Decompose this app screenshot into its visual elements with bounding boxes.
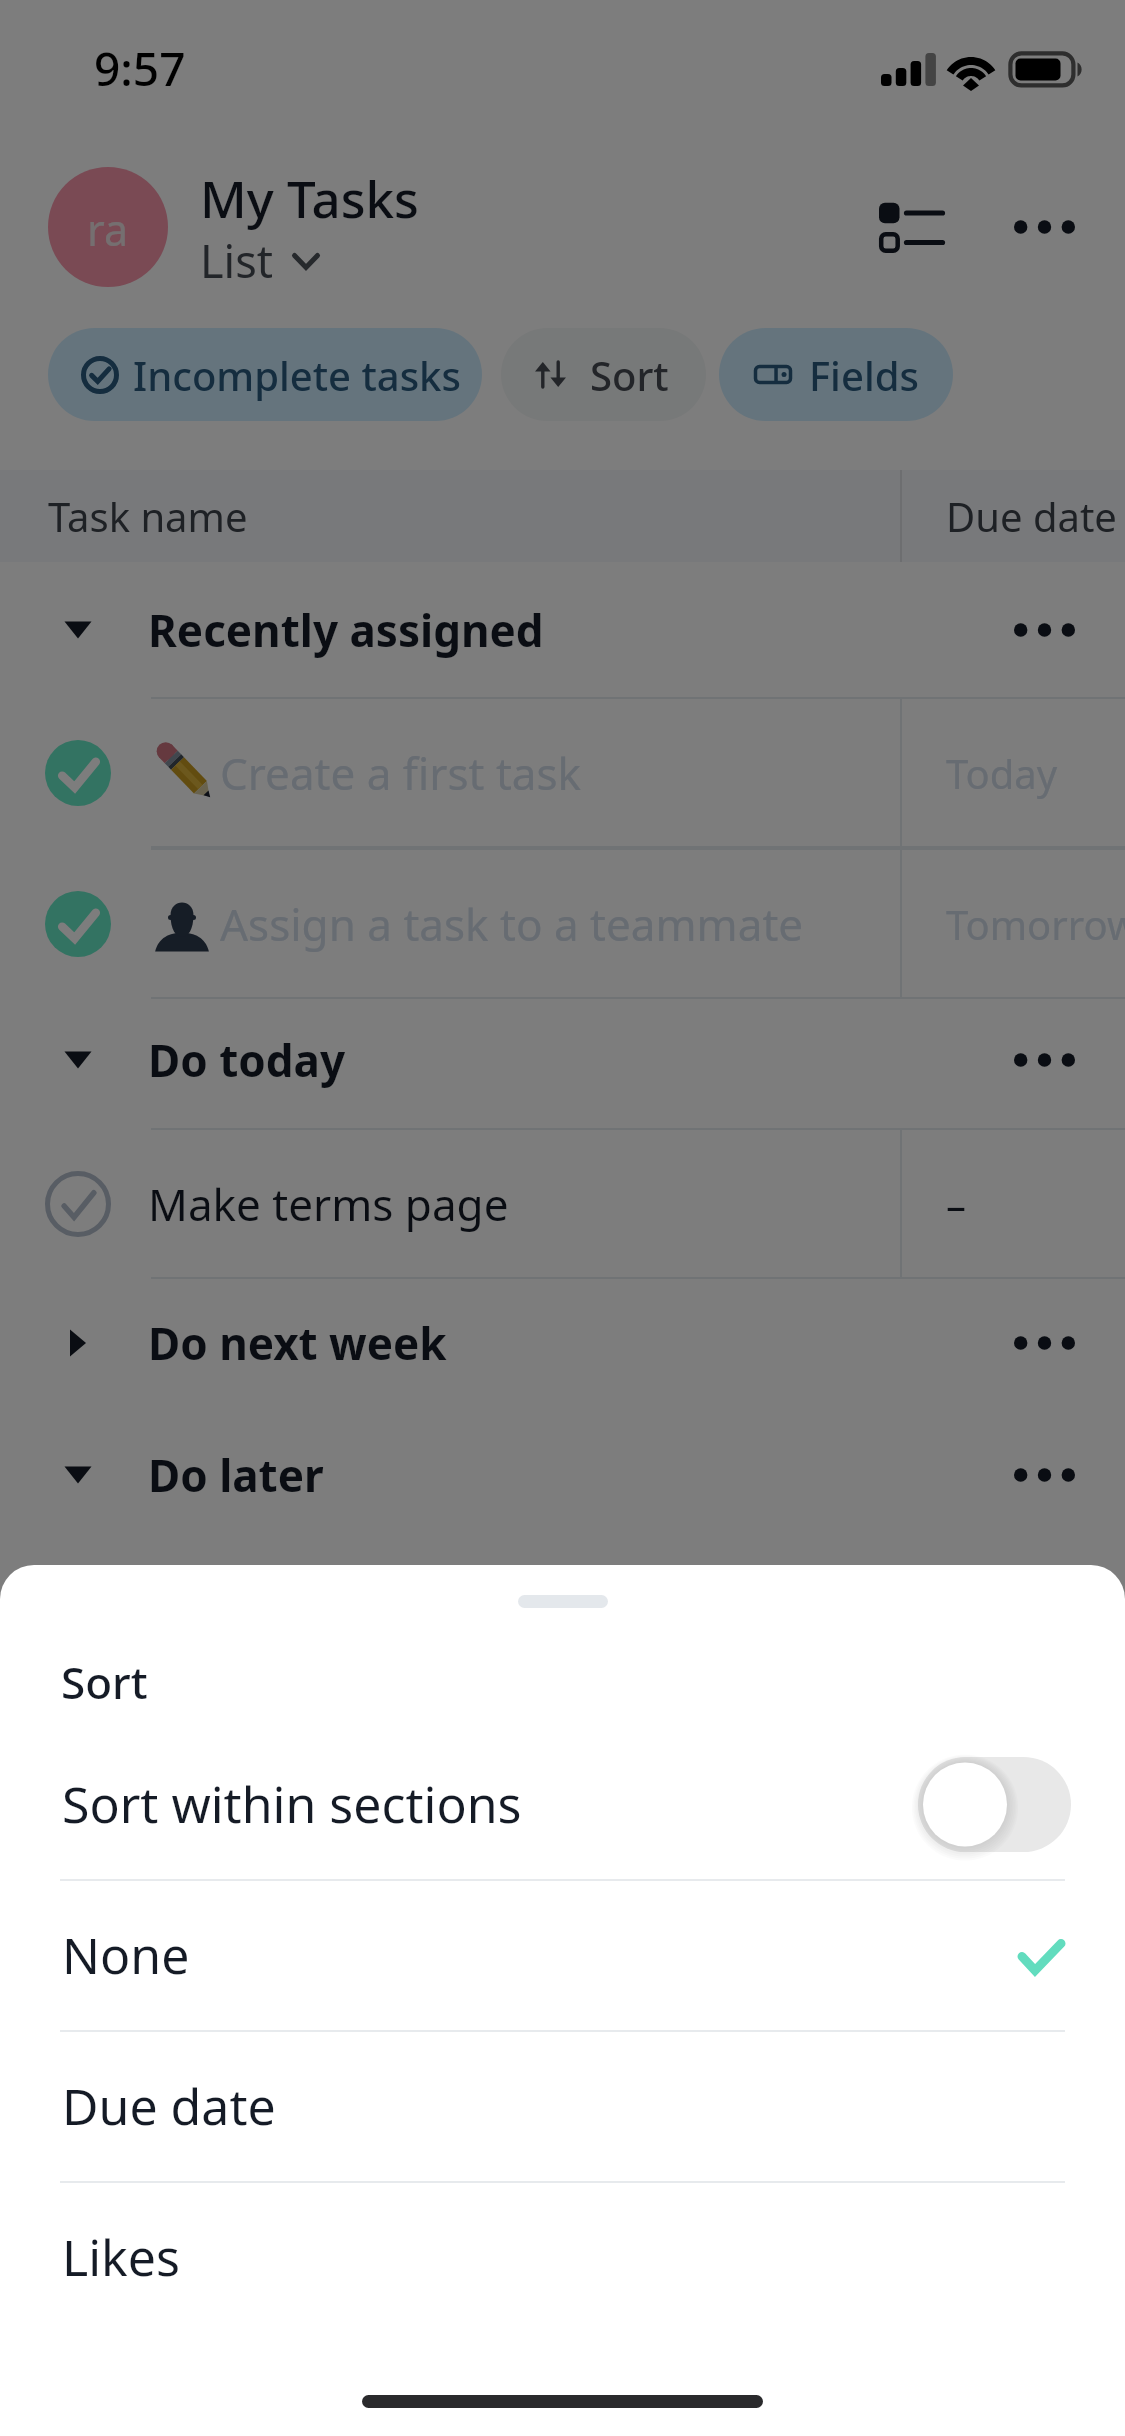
staticText: Make terms page bbox=[148, 1174, 509, 1234]
staticText: – bbox=[946, 1177, 966, 1231]
button[interactable]: Do later bbox=[0, 1415, 1125, 1535]
button[interactable]: Sort within sections toggle bbox=[918, 1757, 1071, 1852]
button[interactable]: Likes bbox=[0, 2181, 1125, 2332]
staticText: My Tasks bbox=[200, 163, 419, 232]
button[interactable]: Sort bbox=[501, 328, 706, 421]
staticText: 9:57 bbox=[94, 37, 186, 100]
staticText: Sort within sections bbox=[62, 1770, 522, 1838]
staticText: Do next week bbox=[148, 1313, 447, 1373]
staticText: None bbox=[62, 1921, 190, 1989]
button[interactable]: List bbox=[196, 226, 336, 288]
button[interactable]: Complete task bbox=[0, 848, 1125, 999]
staticText: Do today bbox=[148, 1030, 346, 1090]
button[interactable]: Complete task bbox=[45, 1171, 111, 1237]
button[interactable]: Do next week bbox=[0, 1283, 1125, 1403]
button[interactable]: Do today bbox=[0, 1000, 1125, 1120]
button[interactable]: More options bbox=[994, 179, 1094, 275]
button[interactable]: Section options bbox=[994, 582, 1094, 678]
button[interactable]: Section options bbox=[994, 1012, 1094, 1108]
staticText: Tomorrow bbox=[946, 897, 1125, 951]
staticText: Today bbox=[946, 746, 1058, 800]
staticText: ra bbox=[87, 200, 129, 259]
button[interactable]: List view bbox=[856, 180, 968, 274]
staticText: Likes bbox=[62, 2223, 180, 2291]
staticText: List bbox=[200, 230, 273, 291]
staticText: Due date bbox=[946, 489, 1117, 543]
staticText: Sort bbox=[590, 348, 669, 402]
button[interactable]: Fields bbox=[719, 328, 953, 421]
staticText: Fields bbox=[809, 348, 919, 402]
button[interactable]: None bbox=[0, 1879, 1125, 2030]
staticText: Create a first task bbox=[220, 743, 582, 803]
button[interactable]: Recently assigned bbox=[0, 570, 1125, 690]
staticText: Sort bbox=[61, 1652, 148, 1712]
button[interactable]: Complete task bbox=[45, 740, 111, 806]
staticText: Assign a task to a teammate bbox=[220, 894, 804, 954]
button[interactable]: Section options bbox=[994, 1295, 1094, 1391]
staticText: Task name bbox=[48, 489, 248, 543]
staticText: Do later bbox=[148, 1445, 324, 1505]
button[interactable]: Due date bbox=[0, 2030, 1125, 2181]
staticText: Due date bbox=[62, 2072, 276, 2140]
button[interactable]: Complete task bbox=[45, 891, 111, 957]
staticText: Incomplete tasks bbox=[133, 348, 461, 402]
button[interactable]: Complete task bbox=[0, 697, 1125, 848]
button[interactable]: Incomplete tasks bbox=[48, 328, 482, 421]
button[interactable]: Account ra bbox=[48, 167, 168, 287]
staticText: Recently assigned bbox=[148, 600, 544, 660]
button[interactable]: Section options bbox=[994, 1427, 1094, 1523]
button[interactable]: Sort within sections bbox=[0, 1729, 1125, 1879]
button[interactable]: Complete task bbox=[0, 1128, 1125, 1279]
